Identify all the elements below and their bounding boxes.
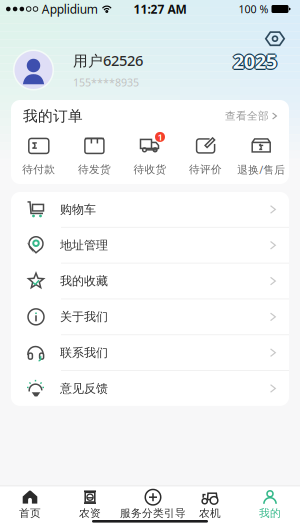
staticText: 11:27 AM [133, 1, 186, 17]
staticText: 关于我们 [60, 309, 108, 324]
button[interactable]: 首页 [0, 490, 60, 520]
button[interactable]: 地址管理 [11, 228, 289, 264]
staticText: 购物车 [60, 202, 96, 217]
button[interactable]: 我的收藏 [11, 264, 289, 299]
button[interactable]: 农机 [180, 490, 240, 520]
button[interactable]: 购物车 [11, 192, 289, 228]
staticText: 2025 [233, 46, 277, 73]
button[interactable]: 退换/售后 [233, 134, 289, 177]
staticText: 意见反馈 [60, 381, 108, 396]
staticText: 地址管理 [60, 238, 108, 253]
staticText: 2025 [233, 49, 277, 75]
button[interactable]: Settings [261, 27, 289, 49]
staticText: 155****8935 [73, 75, 139, 89]
staticText: 待评价 [189, 163, 222, 176]
staticText: 联系我们 [60, 345, 108, 360]
staticText: 待收货 [133, 163, 166, 176]
button[interactable]: 我的 [240, 490, 300, 520]
staticText: 100 % [238, 2, 268, 16]
staticText: 2025 [233, 48, 277, 74]
staticText: 农机 [199, 507, 221, 520]
staticText: 退换/售后 [237, 162, 285, 177]
button[interactable]: 查看全部 [225, 109, 277, 122]
staticText: 待付款 [22, 163, 55, 176]
staticText: 首页 [19, 507, 41, 520]
staticText: 我的 [259, 507, 281, 520]
staticText: 查看全部 [225, 109, 269, 122]
staticText: Applidium [42, 1, 98, 17]
staticText: 我的收藏 [60, 274, 108, 288]
button[interactable]: 待付款 [11, 135, 67, 176]
staticText: 我的订单 [23, 107, 83, 125]
button[interactable]: 服务分类引导 [120, 490, 180, 520]
button[interactable]: 待发货 [67, 135, 122, 176]
staticText: 服务分类引导 [120, 507, 186, 520]
button[interactable]: 待评价 [178, 135, 233, 176]
button[interactable]: 关于我们 [11, 299, 289, 335]
staticText: 2025 [234, 48, 278, 74]
button[interactable]: 意见反馈 [11, 371, 289, 406]
staticText: 用户62526 [73, 51, 143, 70]
button[interactable]: 1 [122, 135, 178, 176]
staticText: 1 [157, 131, 162, 143]
button[interactable]: 联系我们 [11, 335, 289, 371]
staticText: 农资 [79, 507, 101, 520]
staticText: 待发货 [78, 163, 111, 176]
button[interactable]: 农资 [60, 490, 120, 520]
staticText: 2025 [232, 48, 276, 74]
